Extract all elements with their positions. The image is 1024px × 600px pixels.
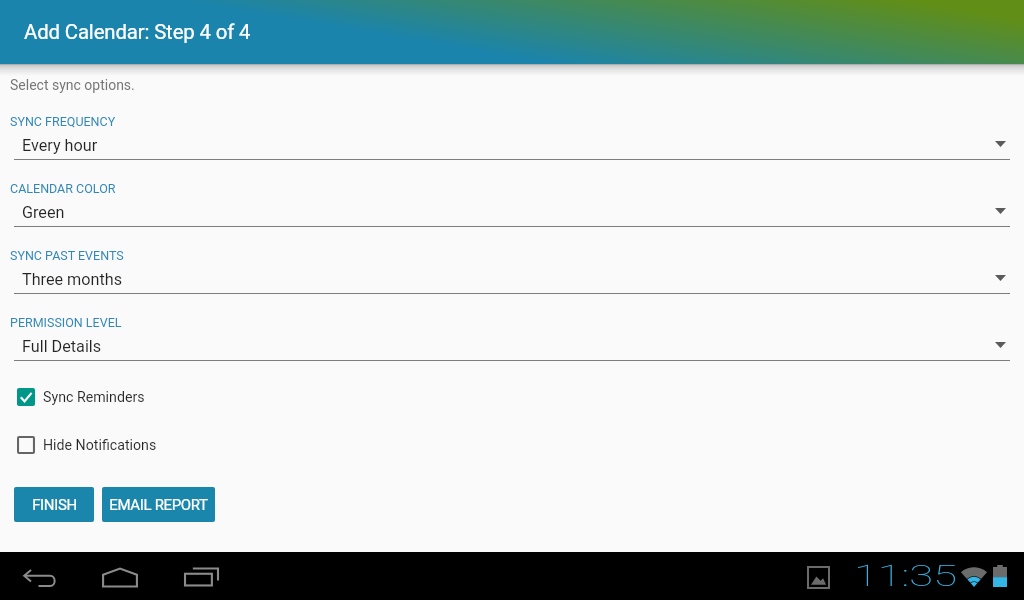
button[interactable]: PERMISSION LEVEL [0, 316, 1024, 370]
staticText: EMAIL REPORT [109, 496, 208, 514]
button[interactable]: Screenshot [800, 559, 836, 595]
button[interactable]: SYNC PAST EVENTS [0, 249, 1024, 303]
staticText: Three months [22, 270, 123, 289]
staticText: Full Details [22, 337, 102, 356]
staticText: SYNC PAST EVENTS [10, 248, 124, 263]
button[interactable]: SYNC FREQUENCY [0, 115, 1024, 169]
button[interactable]: Sync Reminders [0, 384, 1024, 410]
staticText: SYNC FREQUENCY [10, 114, 116, 129]
button[interactable]: Recent apps [179, 555, 223, 599]
button[interactable]: Back [12, 556, 68, 600]
staticText: Every hour [22, 136, 98, 155]
button[interactable]: EMAIL REPORT [102, 487, 215, 522]
staticText: 11:35 [854, 559, 957, 593]
staticText: Add Calendar: Step 4 of 4 [24, 20, 251, 44]
staticText: Hide Notifications [43, 437, 157, 454]
staticText: PERMISSION LEVEL [10, 315, 122, 330]
button[interactable]: CALENDAR COLOR [0, 182, 1024, 236]
staticText: FINISH [32, 496, 77, 514]
staticText: CALENDAR COLOR [10, 181, 116, 196]
button[interactable]: Home [98, 555, 142, 599]
staticText: Sync Reminders [43, 389, 145, 406]
button[interactable]: Hide Notifications [0, 432, 1024, 458]
button[interactable]: FINISH [14, 487, 94, 522]
staticText: Green [22, 203, 65, 222]
staticText: Select sync options. [10, 77, 135, 93]
